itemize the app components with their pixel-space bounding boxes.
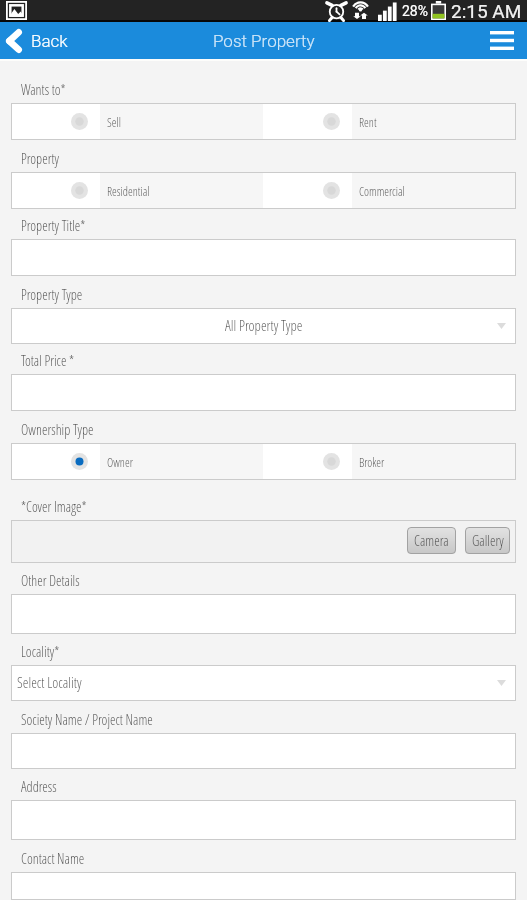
staticText: Gallery [472, 531, 504, 550]
staticText: Select Locality [17, 673, 82, 693]
button[interactable] [11, 374, 516, 411]
staticText: Property Type [21, 285, 83, 304]
staticText: Other Details [21, 571, 80, 590]
button[interactable]: Residential [11, 172, 263, 209]
button[interactable]: Commercial [263, 172, 516, 209]
staticText: Broker [359, 454, 385, 470]
button[interactable]: Back [0, 22, 78, 59]
staticText: *Cover Image* [21, 497, 87, 516]
staticText: Post Property [213, 31, 315, 51]
button[interactable] [11, 239, 516, 276]
staticText: Back [31, 31, 68, 51]
button[interactable]: Menu [478, 22, 527, 59]
button[interactable] [11, 872, 516, 900]
staticText: All Property Type [225, 316, 303, 336]
staticText: Address [21, 777, 57, 796]
staticText: Total Price * [21, 351, 75, 370]
button[interactable] [11, 594, 516, 634]
button[interactable]: Rent [263, 103, 516, 140]
staticText: 2:15 AM [451, 0, 522, 22]
button[interactable]: Camera [407, 527, 456, 554]
button[interactable]: All Property Type [11, 308, 516, 344]
button[interactable]: Select Locality [11, 665, 516, 701]
button[interactable]: Broker [263, 443, 516, 480]
staticText: Property [21, 149, 60, 168]
staticText: 28% [402, 3, 428, 19]
staticText: Contact Name [21, 849, 85, 868]
staticText: Sell [107, 114, 121, 130]
staticText: Rent [359, 114, 377, 130]
staticText: Residential [107, 183, 150, 199]
staticText: Locality* [21, 642, 60, 661]
staticText: Camera [414, 531, 449, 550]
button[interactable] [11, 733, 516, 769]
button[interactable]: Sell [11, 103, 263, 140]
staticText: Society Name / Project Name [21, 710, 153, 729]
staticText: Commercial [359, 183, 405, 199]
staticText: Wants to* [21, 80, 66, 99]
button[interactable]: Gallery [465, 527, 510, 554]
staticText: Owner [107, 454, 133, 470]
staticText: Ownership Type [21, 420, 94, 439]
staticText: Property Title* [21, 216, 86, 235]
button[interactable]: Owner [11, 443, 263, 480]
button[interactable] [11, 800, 516, 840]
button[interactable]: Camera [11, 520, 516, 563]
